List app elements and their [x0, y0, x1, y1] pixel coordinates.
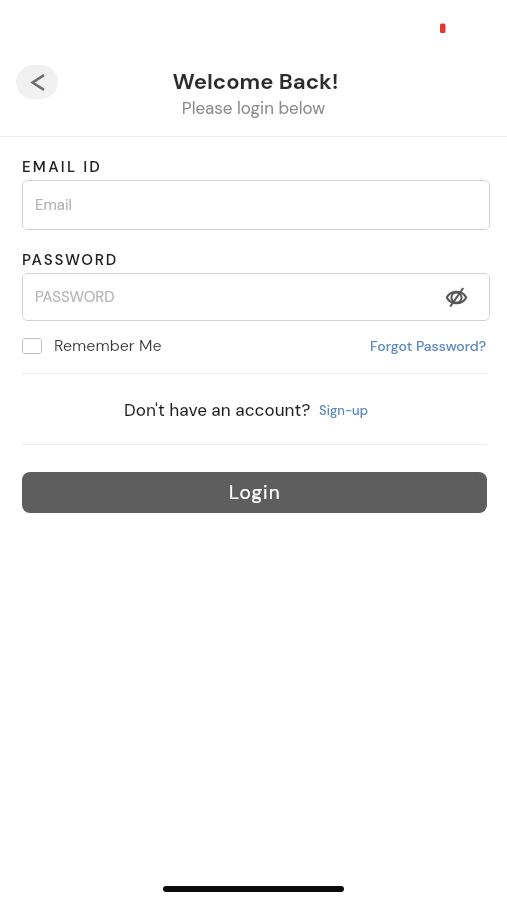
staticText: PASSWORD: [22, 250, 118, 270]
staticText: PASSWORD: [35, 287, 115, 307]
button[interactable]: PASSWORD: [22, 273, 490, 321]
staticText: Please login below: [0, 97, 507, 119]
button[interactable]: Remember Me: [22, 335, 162, 356]
staticText: EMAIL ID: [22, 157, 103, 177]
button[interactable]: Back: [16, 65, 58, 99]
staticText: Forgot Password?: [370, 337, 487, 355]
button[interactable]: Forgot Password?: [370, 337, 487, 355]
staticText: Sign-up: [319, 402, 368, 419]
staticText: Remember Me: [54, 335, 162, 356]
button[interactable]: Sign-up: [319, 402, 368, 421]
staticText: Welcome Back!: [2, 67, 507, 96]
staticText: Don't have an account?: [124, 399, 311, 421]
button[interactable]: Login: [22, 472, 487, 513]
button[interactable]: Show password: [441, 282, 471, 312]
button[interactable]: Email: [22, 180, 490, 230]
staticText: Login: [229, 480, 281, 505]
staticText: Email: [35, 195, 72, 215]
